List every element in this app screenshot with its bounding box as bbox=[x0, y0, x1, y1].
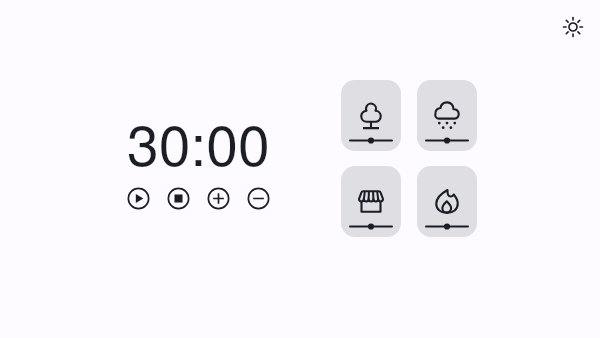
button[interactable]: Forest sound bbox=[341, 80, 401, 151]
button[interactable]: Stop bbox=[167, 187, 190, 210]
button[interactable]: Subtract time bbox=[247, 187, 270, 210]
button[interactable]: Add time bbox=[207, 187, 230, 210]
button[interactable]: Play bbox=[127, 187, 150, 210]
button[interactable]: Cafe sound bbox=[341, 166, 401, 237]
button[interactable]: Toggle light mode bbox=[559, 13, 587, 41]
staticText: 30:00 bbox=[127, 101, 270, 183]
button[interactable]: Rain sound bbox=[417, 80, 477, 151]
button[interactable]: Fire sound bbox=[417, 166, 477, 237]
